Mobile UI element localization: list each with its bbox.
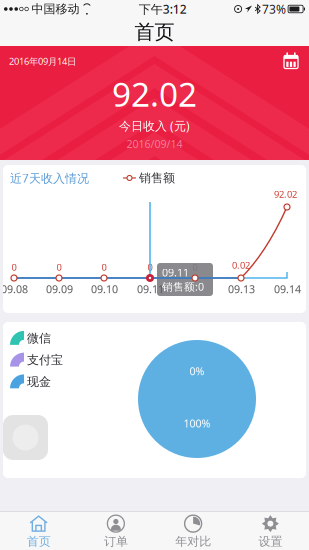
button[interactable]: 选择日期 <box>282 53 300 71</box>
staticText: 92.02 <box>274 188 297 200</box>
staticText: 2016/09/14 <box>126 137 182 151</box>
staticText: 09.11 <box>162 265 189 279</box>
staticText: 首页 <box>134 20 174 44</box>
staticText: 09.14 <box>274 282 301 296</box>
staticText: 09.08 <box>1 282 28 296</box>
staticText: 支付宝 <box>27 353 63 367</box>
staticText: 中国移动 <box>31 2 79 16</box>
staticText: 2016年09月14日 <box>9 55 76 67</box>
staticText: 09.09 <box>46 282 73 296</box>
button[interactable]: 订单 <box>77 510 154 550</box>
staticText: 首页 <box>27 534 51 549</box>
staticText: 100% <box>183 416 210 430</box>
staticText: 下午3:12 <box>139 1 187 17</box>
staticText: 73% <box>262 1 286 17</box>
staticText: 今日收入 (元) <box>119 118 190 134</box>
staticText: 销售额:0 <box>162 279 204 294</box>
staticText: 09.13 <box>228 282 255 296</box>
staticText: 0 <box>11 261 16 273</box>
staticText: 0 <box>101 261 106 273</box>
staticText: 订单 <box>104 534 128 549</box>
staticText: 0% <box>189 364 204 378</box>
button[interactable]: 年对比 <box>154 510 232 550</box>
staticText: 销售额 <box>139 171 175 185</box>
staticText: 现金 <box>27 374 51 389</box>
staticText: 0 <box>192 261 197 273</box>
staticText: 09.10 <box>91 282 118 296</box>
staticText: 设置 <box>258 534 282 549</box>
staticText: 92.02 <box>112 72 197 116</box>
staticText: 09.11 <box>137 282 164 296</box>
staticText: 0.02 <box>232 259 250 271</box>
staticText: 0 <box>56 261 61 273</box>
button[interactable]: 设置 <box>232 510 309 550</box>
staticText: 近7天收入情况 <box>10 170 89 186</box>
staticText: 微信 <box>27 331 51 346</box>
staticText: 年对比 <box>175 534 211 549</box>
button[interactable]: 首页 <box>0 510 77 550</box>
staticText: 0 <box>147 261 152 273</box>
